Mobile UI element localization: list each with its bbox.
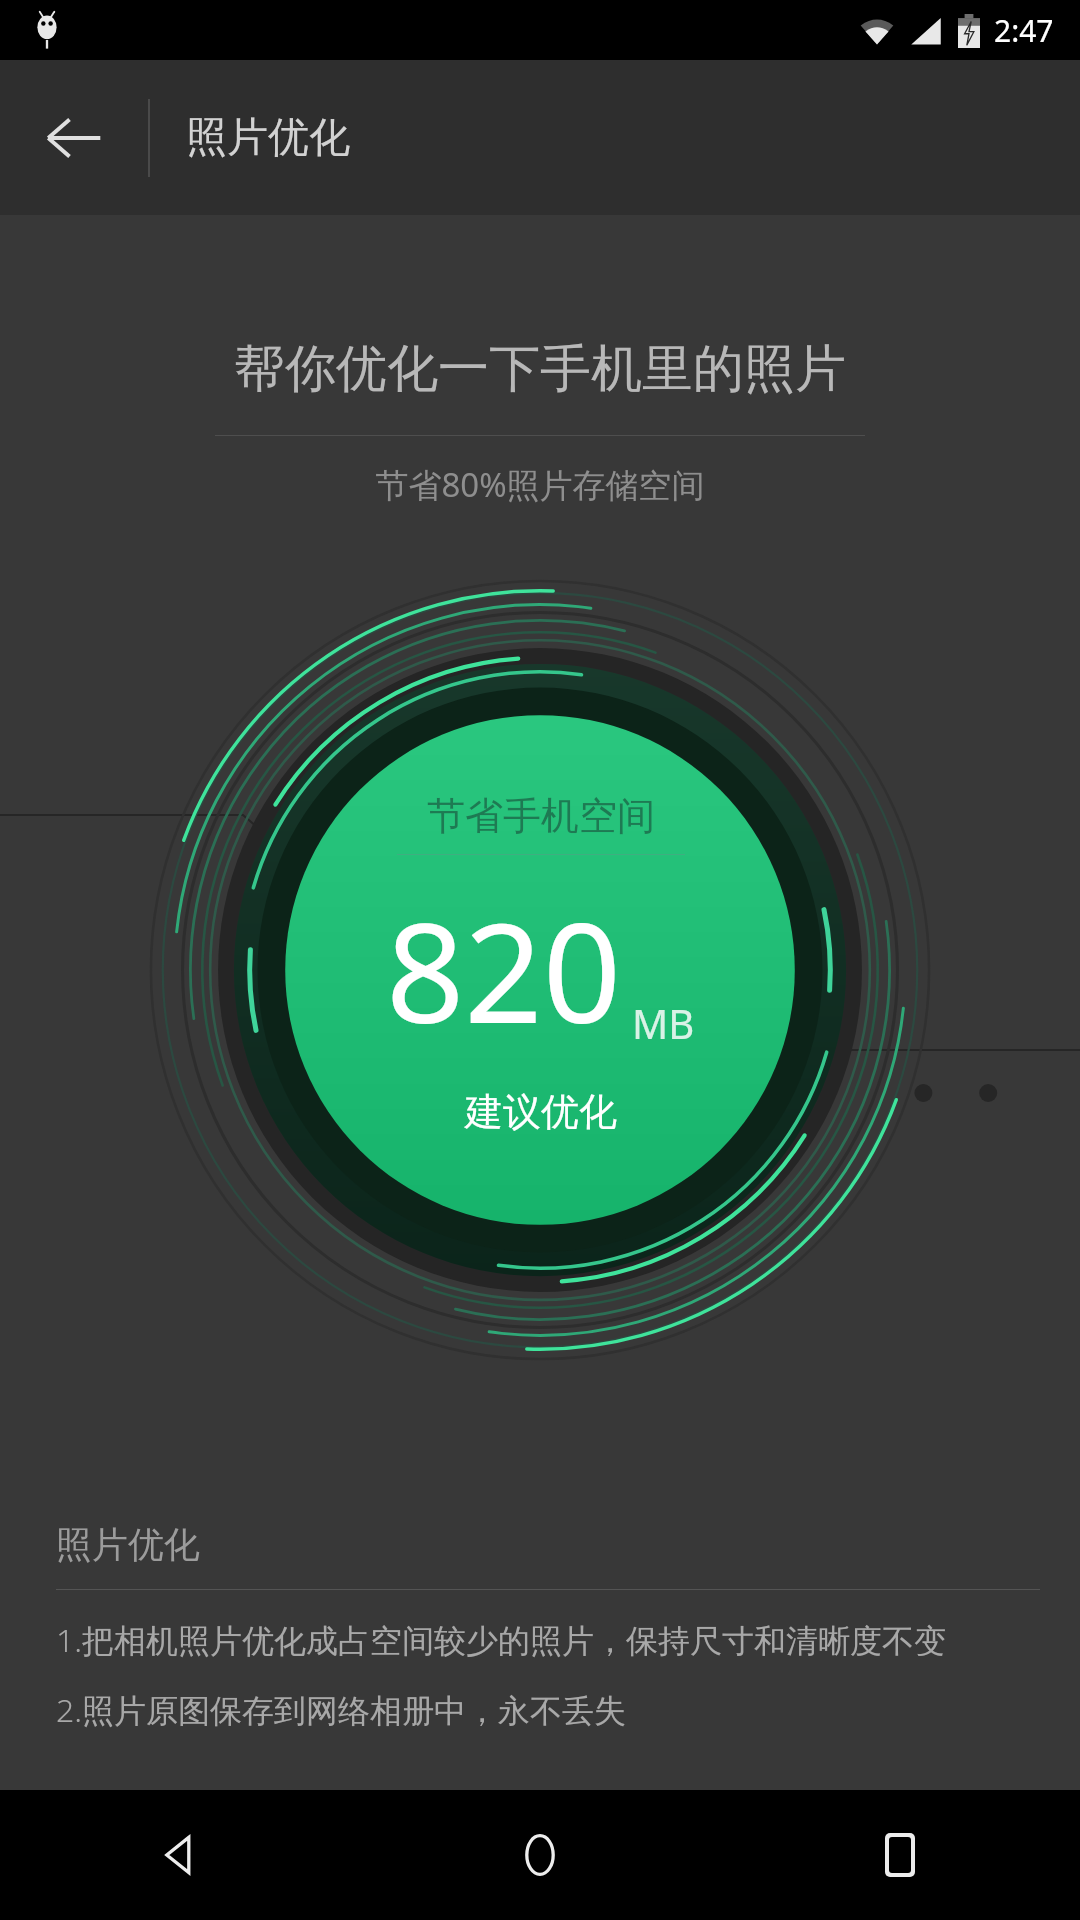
staticText: 820: [386, 877, 622, 1064]
staticText: 2.照片原图保存到网络相册中，永不丢失: [56, 1688, 627, 1732]
staticText: 照片优化: [56, 1522, 200, 1567]
button[interactable]: Back: [0, 1790, 360, 1920]
staticText: 节省手机空间: [427, 792, 655, 840]
staticText: 2:47: [994, 10, 1054, 51]
button[interactable]: Back: [0, 60, 148, 215]
staticText: 照片优化: [186, 112, 350, 164]
staticText: MB: [632, 996, 695, 1050]
staticText: 建议优化: [465, 1088, 617, 1136]
button[interactable]: Recent apps: [720, 1790, 1080, 1920]
staticText: 1.把相机照片优化成占空间较少的照片，保持尺寸和清晰度不变: [56, 1618, 947, 1662]
staticText: 帮你优化一下手机里的照片: [234, 337, 846, 401]
button[interactable]: Home: [360, 1790, 720, 1920]
staticText: 节省80%照片存储空间: [375, 462, 705, 507]
